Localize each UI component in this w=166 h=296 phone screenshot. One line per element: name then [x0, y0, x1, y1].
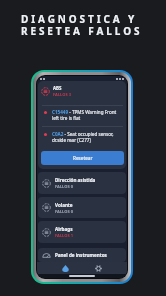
staticText: FALLOS 0	[55, 184, 73, 189]
staticText: FALLOS 0	[55, 209, 73, 214]
staticText: FALLOS 3	[53, 92, 71, 97]
button[interactable]: Diagnostico	[60, 263, 71, 274]
button[interactable]: ABS	[38, 81, 126, 169]
button[interactable]: Panel de instrumentos	[38, 248, 126, 262]
staticText: Panel de instrumentos	[55, 252, 107, 258]
staticText: ABS	[53, 85, 62, 91]
staticText: FALLOS 1	[55, 233, 73, 238]
staticText: C15449 - TPMS Warning Front left tire is…	[52, 109, 124, 121]
staticText: Resetear	[73, 155, 93, 161]
button[interactable]: Volante	[38, 197, 126, 218]
staticText: RESETEA FALLOS	[21, 24, 143, 38]
staticText: C0A2 - Seat occupied sensor, dr.side rea…	[52, 131, 124, 143]
button[interactable]: Ajustes	[93, 263, 104, 274]
button[interactable]: Resetear	[41, 151, 124, 165]
staticText: Volante	[55, 202, 73, 208]
staticText: DIAGNOSTICA Y	[21, 12, 138, 26]
button[interactable]: Airbags	[38, 221, 126, 243]
staticText: Airbags	[55, 226, 73, 232]
staticText: Dirección asistida	[55, 177, 96, 183]
button[interactable]: Dirección asistida	[38, 172, 126, 194]
